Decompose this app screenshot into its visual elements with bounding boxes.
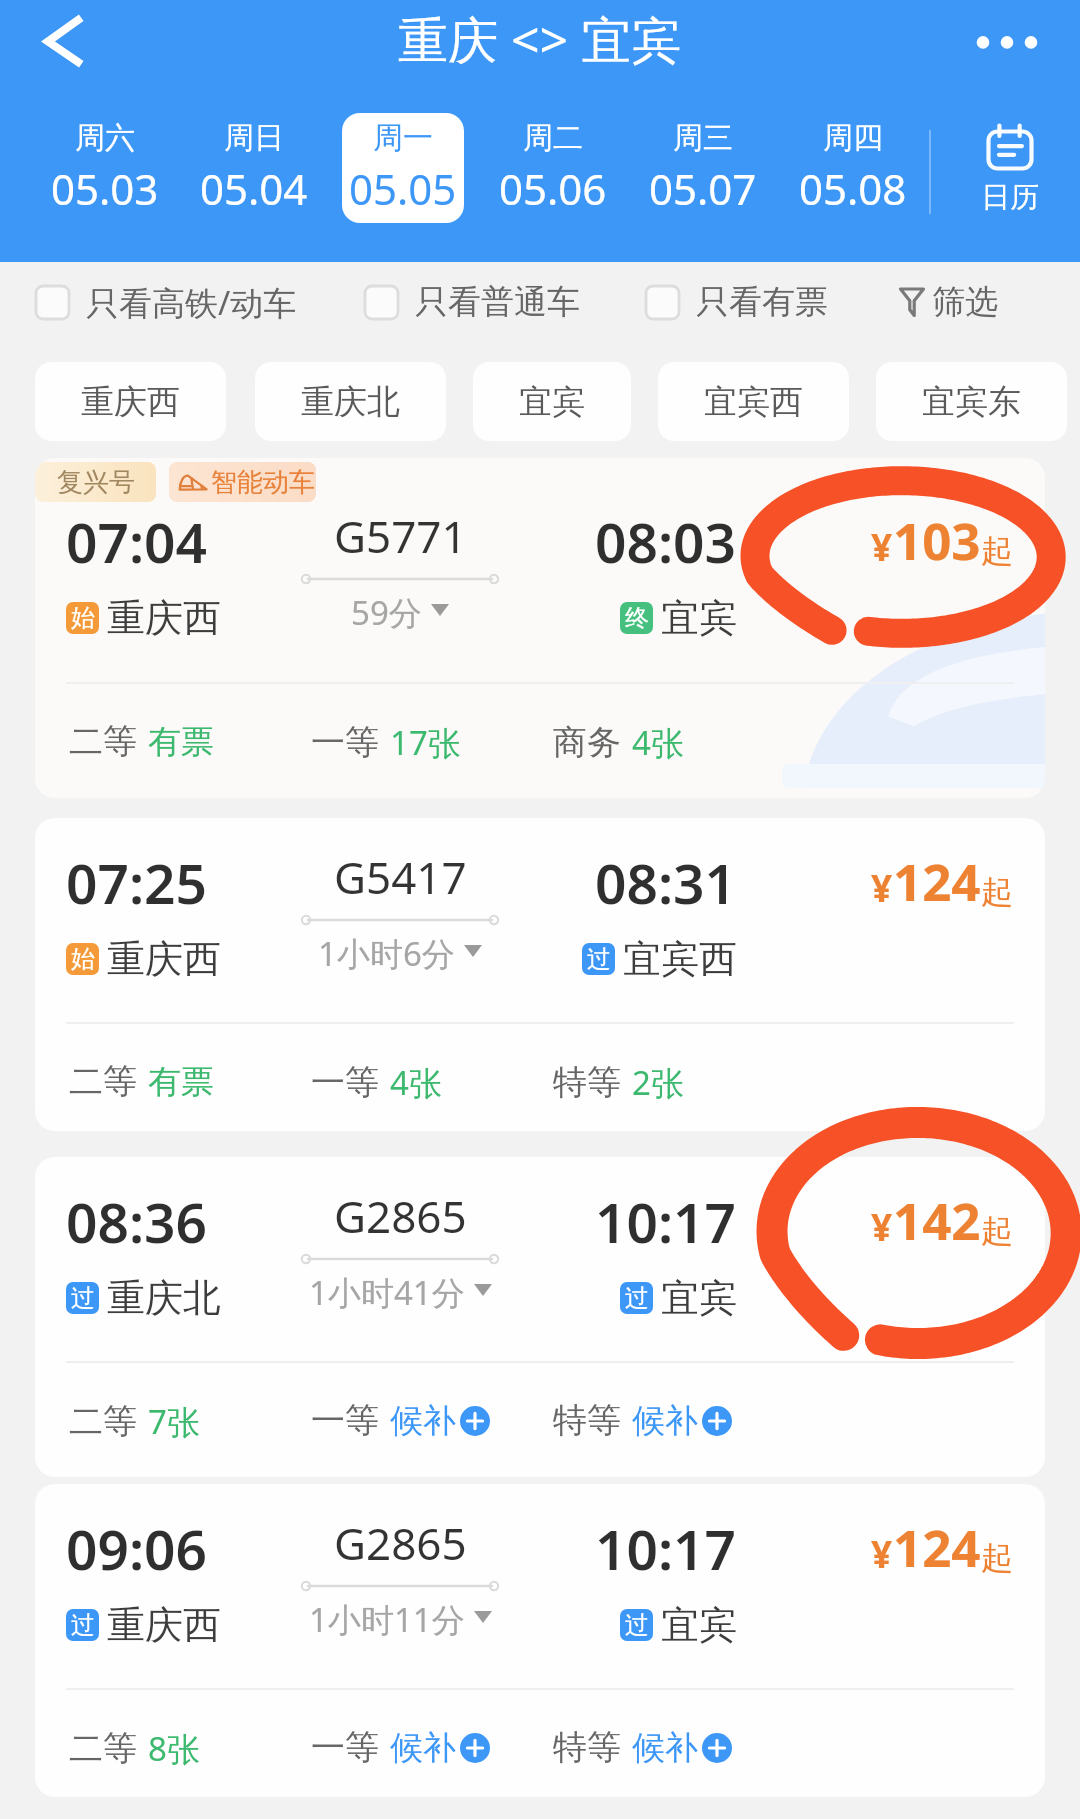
button[interactable]: 周三: [642, 113, 764, 223]
button[interactable]: 周一: [342, 113, 464, 223]
button[interactable]: 只看高铁/动车: [36, 271, 297, 333]
button[interactable]: 周二: [492, 113, 614, 223]
staticText: 候补: [390, 1400, 456, 1442]
staticText: 142: [893, 1185, 981, 1254]
staticText: 重庆北: [301, 381, 400, 423]
staticText: 二等: [69, 720, 137, 763]
staticText: 周二: [523, 119, 583, 157]
button[interactable]: More options: [965, 0, 1051, 84]
staticText: 重庆西: [81, 381, 180, 423]
button[interactable]: 只看有票: [646, 271, 828, 333]
button[interactable]: 周六: [44, 113, 166, 223]
staticText: 1小时41分: [309, 1270, 465, 1315]
button[interactable]: Calendar: [945, 113, 1075, 223]
staticText: 59分: [351, 590, 422, 635]
staticText: 05.08: [799, 160, 907, 217]
staticText: 05.04: [200, 160, 308, 217]
staticText: ¥: [871, 862, 893, 912]
staticText: 过: [587, 944, 611, 974]
staticText: 候补: [390, 1727, 456, 1769]
staticText: 复兴号: [57, 466, 135, 499]
staticText: 起: [981, 1538, 1013, 1578]
staticText: ¥: [871, 1528, 893, 1578]
staticText: 周一: [373, 119, 433, 157]
staticText: 07:04: [66, 504, 208, 579]
button[interactable]: 宜宾: [473, 362, 631, 441]
staticText: 起: [981, 1211, 1013, 1251]
staticText: 重庆西: [107, 1601, 221, 1649]
staticText: 始: [71, 603, 95, 633]
staticText: 05.07: [649, 160, 757, 217]
staticText: 宜宾东: [922, 381, 1021, 423]
button[interactable]: 筛选: [886, 271, 998, 333]
staticText: 周三: [673, 119, 733, 157]
staticText: 特等: [553, 1726, 621, 1769]
staticText: 重庆西: [107, 935, 221, 983]
staticText: 宜宾: [661, 1274, 737, 1322]
staticText: 重庆北: [107, 1274, 221, 1322]
button[interactable]: 重庆西: [35, 362, 226, 441]
staticText: G5417: [334, 847, 467, 907]
button[interactable]: 08:36: [35, 1157, 1045, 1477]
staticText: 二等: [69, 1060, 137, 1103]
staticText: G2865: [334, 1186, 467, 1246]
staticText: 只看普通车: [415, 281, 580, 323]
staticText: 124: [893, 1512, 981, 1581]
staticText: 7张: [148, 1399, 200, 1444]
button[interactable]: 周四: [792, 113, 914, 223]
staticText: 一等: [311, 1399, 379, 1442]
staticText: 候补: [632, 1400, 698, 1442]
staticText: 1小时11分: [309, 1597, 465, 1642]
staticText: 始: [71, 944, 95, 974]
staticText: 10:17: [595, 1184, 737, 1259]
staticText: 17张: [390, 720, 461, 765]
staticText: 宜宾: [661, 594, 737, 642]
staticText: 08:03: [595, 504, 737, 579]
button[interactable]: 宜宾东: [876, 362, 1067, 441]
staticText: 宜宾西: [623, 935, 737, 983]
staticText: 宜宾: [661, 1601, 737, 1649]
staticText: 商务: [553, 721, 621, 764]
staticText: 有票: [148, 1061, 214, 1103]
button[interactable]: 周日: [193, 113, 315, 223]
staticText: 只看有票: [696, 281, 828, 323]
staticText: 一等: [311, 721, 379, 764]
staticText: 终: [625, 603, 649, 633]
staticText: 4张: [390, 1060, 442, 1105]
staticText: 周六: [75, 119, 135, 157]
staticText: 特等: [553, 1399, 621, 1442]
staticText: ¥: [871, 1201, 893, 1251]
staticText: 过: [71, 1610, 95, 1640]
staticText: 一等: [311, 1726, 379, 1769]
staticText: 4张: [632, 720, 684, 765]
button[interactable]: 复兴号: [35, 458, 1045, 798]
staticText: 宜宾: [519, 381, 585, 423]
staticText: 宜宾西: [704, 381, 803, 423]
staticText: 重庆西: [107, 594, 221, 642]
staticText: 起: [981, 531, 1013, 571]
staticText: 10:17: [595, 1511, 737, 1586]
staticText: 二等: [69, 1727, 137, 1770]
button[interactable]: 07:25: [35, 818, 1045, 1131]
staticText: ¥: [871, 521, 893, 571]
staticText: 过: [71, 1283, 95, 1313]
button[interactable]: Back: [18, 0, 102, 84]
staticText: 起: [981, 872, 1013, 912]
staticText: 只看高铁/动车: [86, 280, 297, 325]
staticText: 周日: [224, 119, 284, 157]
staticText: 重庆 <> 宜宾: [398, 5, 682, 73]
staticText: 05.03: [51, 160, 159, 217]
button[interactable]: 重庆北: [255, 362, 446, 441]
staticText: 103: [893, 505, 981, 574]
staticText: 08:31: [595, 845, 737, 920]
staticText: 特等: [553, 1061, 621, 1104]
staticText: 候补: [632, 1727, 698, 1769]
staticText: 智能动车: [211, 466, 315, 499]
button[interactable]: 09:06: [35, 1484, 1045, 1797]
button[interactable]: 宜宾西: [658, 362, 849, 441]
staticText: 筛选: [932, 281, 998, 323]
button[interactable]: 只看普通车: [365, 271, 580, 333]
staticText: 过: [625, 1283, 649, 1313]
staticText: 8张: [148, 1726, 200, 1771]
staticText: 09:06: [66, 1511, 208, 1586]
